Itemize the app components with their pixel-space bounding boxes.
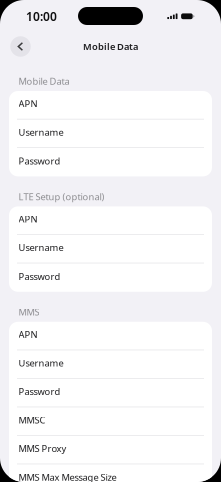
button[interactable]: Password [9, 263, 212, 292]
button[interactable]: Username [9, 350, 212, 379]
staticText: APN [18, 213, 37, 225]
button[interactable]: Password [9, 148, 212, 176]
staticText: MMS Max Message Size [18, 471, 116, 482]
button[interactable]: APN [9, 206, 212, 235]
staticText: LTE Setup (optional) [18, 190, 104, 203]
staticText: Username [18, 126, 63, 138]
staticText: Mobile Data [83, 40, 138, 53]
staticText: MMSC [18, 414, 45, 426]
staticText: Username [18, 357, 63, 369]
button[interactable]: APN [9, 322, 212, 350]
staticText: Password [18, 270, 60, 282]
button[interactable]: Password [9, 379, 212, 407]
staticText: MMS Proxy [18, 442, 66, 455]
staticText: APN [18, 328, 37, 341]
staticText: Mobile Data [18, 75, 69, 87]
staticText: Password [18, 155, 60, 167]
staticText: 10:00 [26, 8, 57, 24]
button[interactable]: Username [9, 235, 212, 263]
button[interactable]: Back [7, 33, 34, 60]
button[interactable]: Username [9, 119, 212, 148]
button[interactable]: APN [9, 91, 212, 119]
staticText: APN [18, 97, 37, 110]
staticText: MMS [18, 306, 39, 318]
button[interactable]: MMS Max Message Size [9, 464, 212, 482]
staticText: Password [18, 385, 60, 398]
staticText: Username [18, 241, 63, 254]
button[interactable]: MMSC [9, 407, 212, 436]
button[interactable]: MMS Proxy [9, 436, 212, 464]
